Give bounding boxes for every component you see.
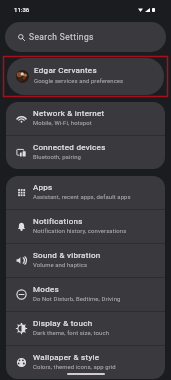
- staticText: Do Not Disturb, Bedtime, Driving: [33, 296, 121, 303]
- staticText: Notification history, conversations: [33, 228, 127, 235]
- button[interactable]: Display & touch: [6, 312, 165, 345]
- staticText: Connected devices: [33, 143, 106, 152]
- staticText: 11:36: [14, 6, 30, 13]
- button[interactable]: Network & internet: [6, 102, 165, 135]
- button[interactable]: Notifications: [6, 210, 165, 243]
- staticText: Colors, themed icons, app grid: [33, 364, 116, 371]
- button[interactable]: Wallpaper & style: [6, 346, 165, 379]
- button[interactable]: Connected devices: [6, 136, 165, 169]
- staticText: Apps: [33, 183, 53, 192]
- staticText: Search Settings: [29, 32, 94, 42]
- staticText: Modes: [33, 285, 59, 294]
- staticText: Google services and preferences: [34, 78, 124, 85]
- button[interactable]: Search Settings: [5, 22, 166, 52]
- staticText: Display & touch: [33, 319, 93, 328]
- staticText: Dark theme, font size, touch: [33, 330, 110, 337]
- staticText: Mobile, Wi-Fi, hotspot: [33, 120, 92, 127]
- button[interactable]: Sound & vibration: [6, 244, 165, 277]
- staticText: Assistant, recent apps, default apps: [33, 194, 131, 201]
- staticText: Notifications: [33, 217, 83, 226]
- staticText: Volume and haptics: [33, 262, 88, 269]
- staticText: Edgar Cervantes: [34, 66, 97, 75]
- staticText: Wallpaper & style: [33, 353, 100, 362]
- button[interactable]: Edgar Cervantes: [7, 58, 164, 95]
- staticText: Sound & vibration: [33, 251, 101, 260]
- staticText: Network & internet: [33, 109, 105, 118]
- button[interactable]: Apps: [6, 176, 165, 209]
- staticText: Bluetooth, pairing: [33, 154, 81, 161]
- button[interactable]: Modes: [6, 278, 165, 311]
